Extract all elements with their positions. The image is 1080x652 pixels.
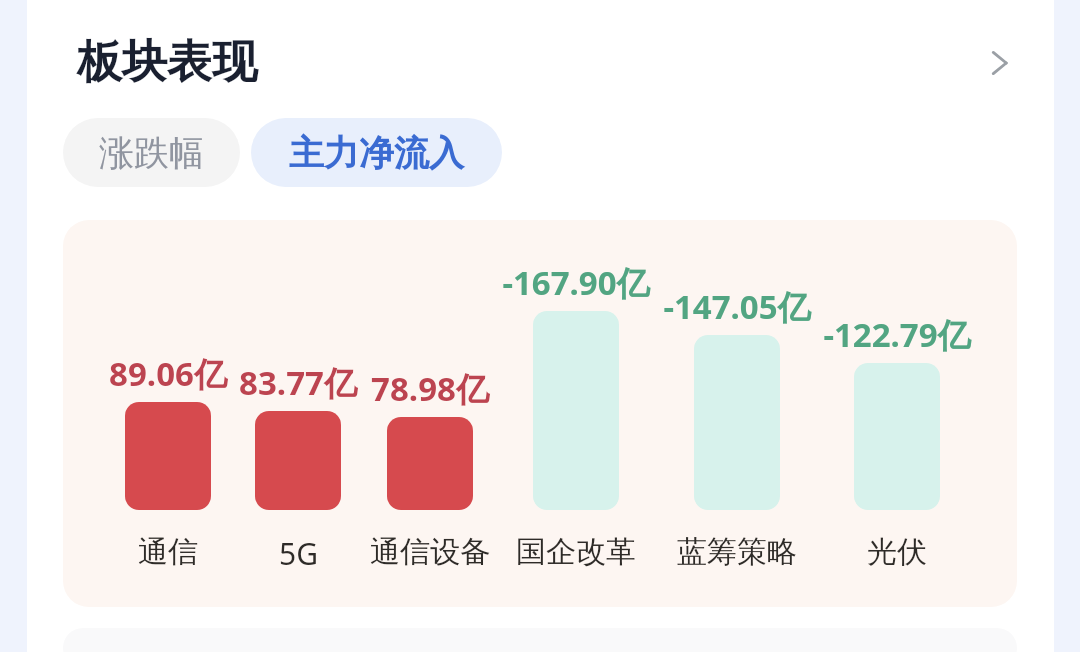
staticText: 通信设备 [370, 533, 490, 571]
staticText: -122.79亿 [823, 312, 971, 357]
staticText: 通信 [138, 533, 198, 571]
button[interactable]: 89.06亿 [109, 220, 227, 607]
staticText: 涨跌幅 [99, 131, 204, 175]
button[interactable]: -122.79亿 [823, 220, 971, 607]
staticText: 蓝筹策略 [677, 533, 797, 571]
button[interactable]: 板块表现 [27, 0, 1054, 110]
staticText: 83.77亿 [239, 360, 357, 405]
staticText: 5G [279, 533, 318, 574]
button[interactable]: 78.98亿 [370, 220, 490, 607]
staticText: 板块表现 [77, 34, 257, 91]
button[interactable]: 主力净流入 [251, 118, 502, 187]
staticText: 78.98亿 [371, 366, 489, 411]
staticText: 89.06亿 [109, 351, 227, 396]
staticText: 主力净流入 [289, 131, 464, 175]
button[interactable]: 涨跌幅 [63, 118, 240, 187]
staticText: -167.90亿 [502, 260, 650, 305]
button[interactable]: 83.77亿 [239, 220, 357, 607]
other: More sector performance [977, 41, 1021, 85]
staticText: 光伏 [867, 533, 927, 571]
button[interactable]: -167.90亿 [502, 220, 650, 607]
staticText: 国企改革 [516, 533, 636, 571]
staticText: -147.05亿 [663, 284, 811, 329]
button[interactable]: -147.05亿 [663, 220, 811, 607]
